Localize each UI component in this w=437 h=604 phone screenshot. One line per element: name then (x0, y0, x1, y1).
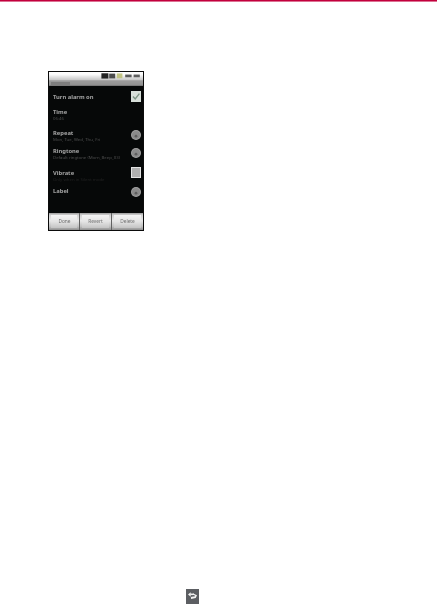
staticText: Ringtone (53, 147, 80, 155)
button[interactable]: Ringtone (49, 145, 143, 162)
button[interactable]: Done (51, 215, 77, 228)
staticText: 06:46 (53, 115, 64, 121)
staticText: Only when in Silent mode (53, 176, 105, 182)
button[interactable]: Vibrate (49, 167, 143, 184)
button[interactable]: Repeat (49, 127, 143, 144)
staticText: Done (58, 218, 71, 225)
button[interactable]: Time (49, 106, 143, 123)
staticText: Revert (88, 218, 103, 225)
button[interactable]: Back (186, 589, 199, 604)
button[interactable]: Turn alarm on (49, 90, 143, 104)
staticText: Delete (120, 218, 135, 225)
button[interactable]: Revert (82, 215, 109, 228)
staticText: Label (53, 187, 69, 195)
button[interactable]: Label (49, 184, 143, 198)
staticText: Time (53, 108, 68, 116)
staticText: Mon, Tue, Wed, Thu, Fri (53, 136, 101, 142)
staticText: Vibrate (53, 169, 75, 177)
staticText: Default ringtone (Morn_Beep_03) (53, 154, 120, 160)
staticText: Repeat (53, 129, 74, 137)
button[interactable]: Delete (114, 215, 141, 228)
staticText: Turn alarm on (53, 93, 94, 101)
